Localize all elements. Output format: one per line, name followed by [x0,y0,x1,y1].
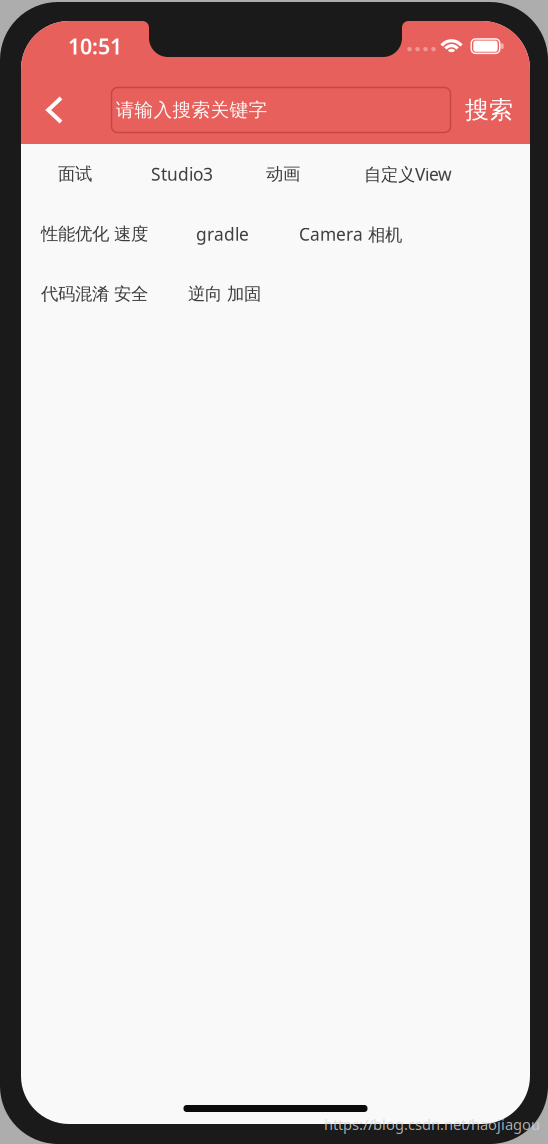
staticText: 代码混淆 安全 [41,283,148,305]
button[interactable]: Studio3 [92,153,213,194]
button[interactable]: 面试 [21,154,92,194]
button[interactable]: gradle [148,213,249,254]
button[interactable]: 请输入搜索关键字 [111,87,450,132]
staticText: 性能优化 速度 [41,223,148,245]
button[interactable]: 动画 [213,154,300,194]
staticText: 面试 [58,163,92,185]
staticText: Studio3 [151,162,213,185]
staticText: 逆向 加固 [188,283,261,305]
button[interactable]: 代码混淆 安全 [21,274,148,314]
button[interactable]: Back [31,86,79,134]
staticText: 10:51 [68,32,122,60]
staticText: Camera 相机 [299,222,402,245]
staticText: 请输入搜索关键字 [115,98,267,121]
button[interactable]: 自定义View [300,153,452,194]
staticText: 动画 [266,163,300,185]
staticText: 搜索 [465,95,513,125]
staticText: https://blog.csdn.net/haojiagou [324,1114,540,1134]
button[interactable]: 逆向 加固 [148,274,261,314]
button[interactable]: Camera 相机 [249,213,402,254]
button[interactable]: 搜索 [455,86,523,134]
staticText: 自定义View [364,162,452,185]
button[interactable]: 性能优化 速度 [21,214,148,254]
staticText: gradle [196,222,249,245]
